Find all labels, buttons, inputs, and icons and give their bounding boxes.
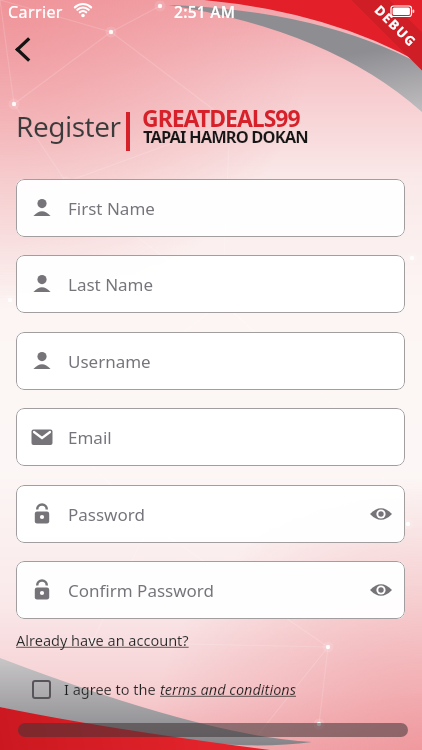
button[interactable]: Already have an account? xyxy=(16,630,189,650)
staticText: Email xyxy=(68,426,112,449)
staticText: terms and conditions xyxy=(160,679,296,699)
staticText: Carrier xyxy=(8,1,63,23)
staticText: DEBUG xyxy=(371,1,421,51)
staticText: Password xyxy=(68,503,145,526)
staticText: GREATDEALS99 xyxy=(142,102,300,133)
staticText: Username xyxy=(68,350,151,373)
button[interactable] xyxy=(32,680,51,699)
button[interactable]: Confirm Password xyxy=(16,561,405,619)
button[interactable] xyxy=(18,723,408,737)
staticText: 2:51 AM xyxy=(174,1,236,22)
button[interactable]: Last Name xyxy=(16,255,405,313)
button[interactable]: Email xyxy=(16,408,405,466)
button[interactable]: Password xyxy=(16,485,405,543)
staticText: TAPAI HAMRO DOKAN xyxy=(143,125,308,147)
staticText: I agree to the xyxy=(64,679,160,699)
staticText: Register xyxy=(16,107,121,145)
button[interactable]: DEBUG xyxy=(344,0,422,77)
staticText: Last Name xyxy=(68,273,154,296)
button[interactable]: terms and conditions xyxy=(160,679,296,699)
button[interactable] xyxy=(4,30,44,70)
staticText: Confirm Password xyxy=(68,579,214,602)
staticText: First Name xyxy=(68,197,155,220)
staticText: Already have an account? xyxy=(16,630,189,650)
button[interactable]: First Name xyxy=(16,179,405,237)
button[interactable]: Username xyxy=(16,332,405,390)
